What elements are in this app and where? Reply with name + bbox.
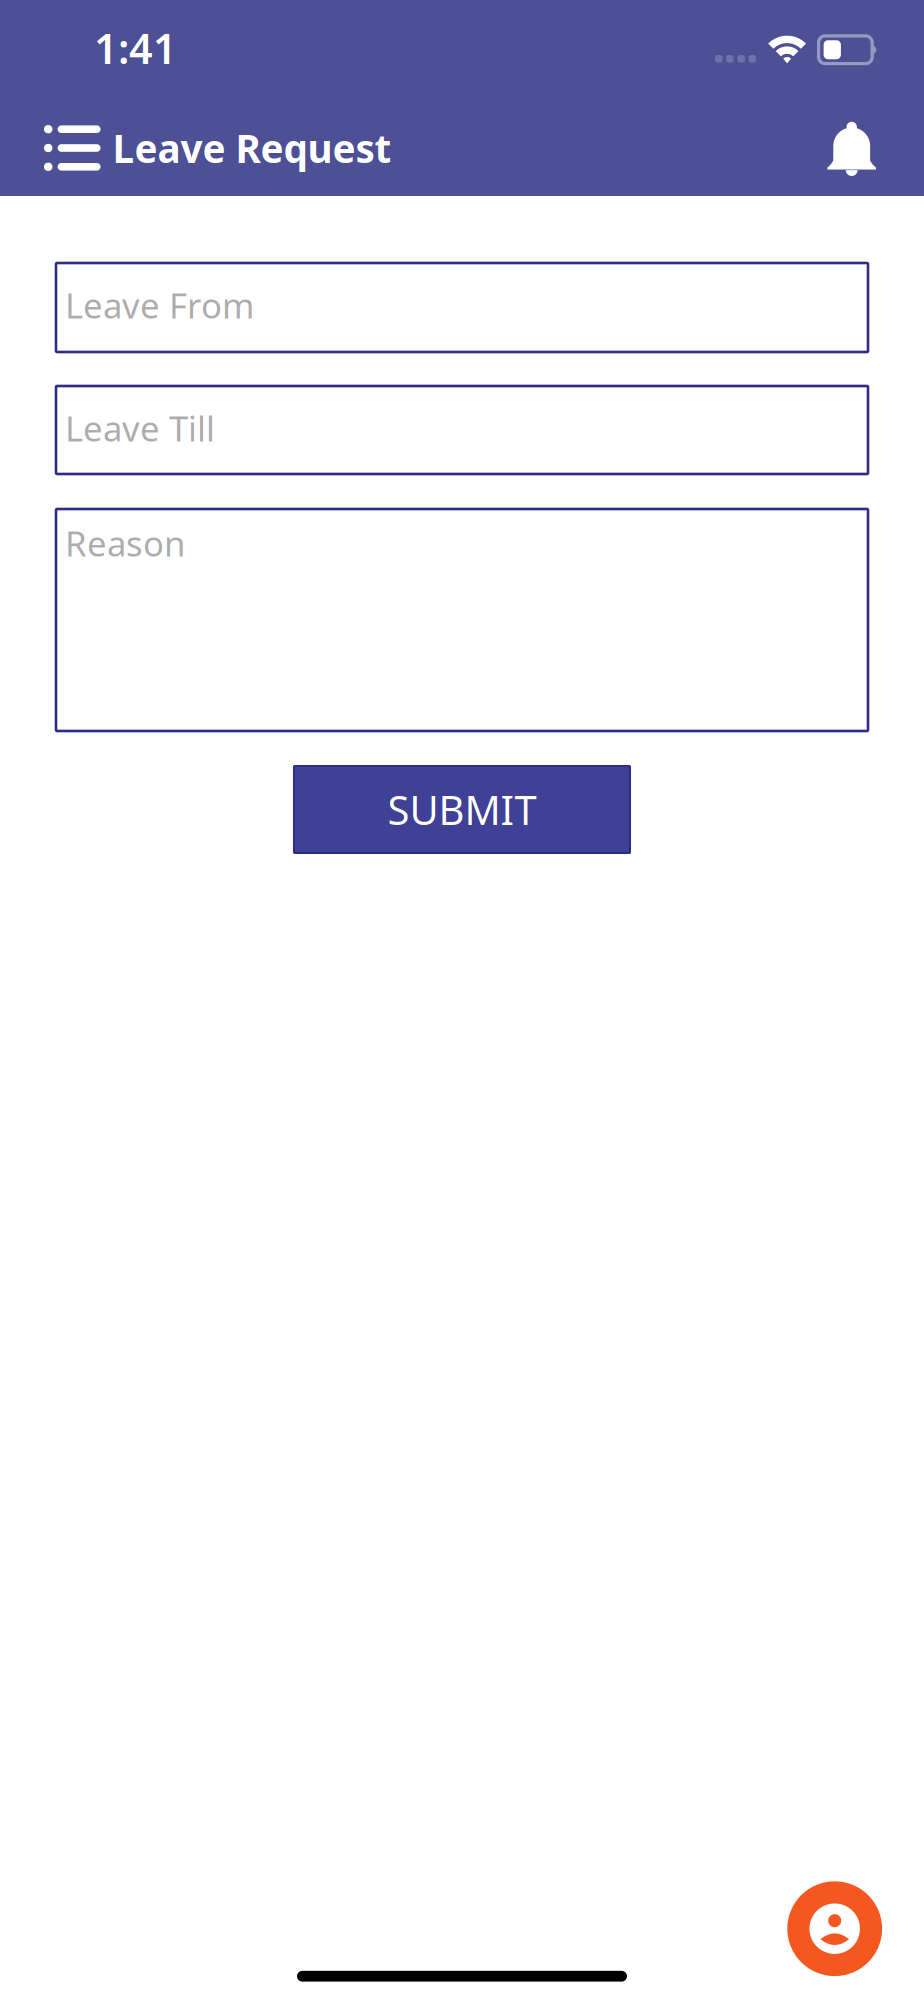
staticText: Leave From <box>65 282 254 328</box>
button[interactable]: Profile <box>787 1881 882 1976</box>
button[interactable]: Reason <box>56 509 868 731</box>
staticText: SUBMIT <box>387 783 536 836</box>
staticText: Leave Request <box>113 122 392 174</box>
staticText: Reason <box>65 520 185 566</box>
button[interactable]: Notifications <box>827 98 924 198</box>
button[interactable]: Menu <box>0 98 113 198</box>
button[interactable]: Leave From <box>56 263 868 352</box>
staticText: 1:41 <box>94 21 177 75</box>
button[interactable]: Leave Till <box>56 386 868 474</box>
button[interactable]: SUBMIT <box>294 766 630 853</box>
staticText: Leave Till <box>65 405 215 451</box>
